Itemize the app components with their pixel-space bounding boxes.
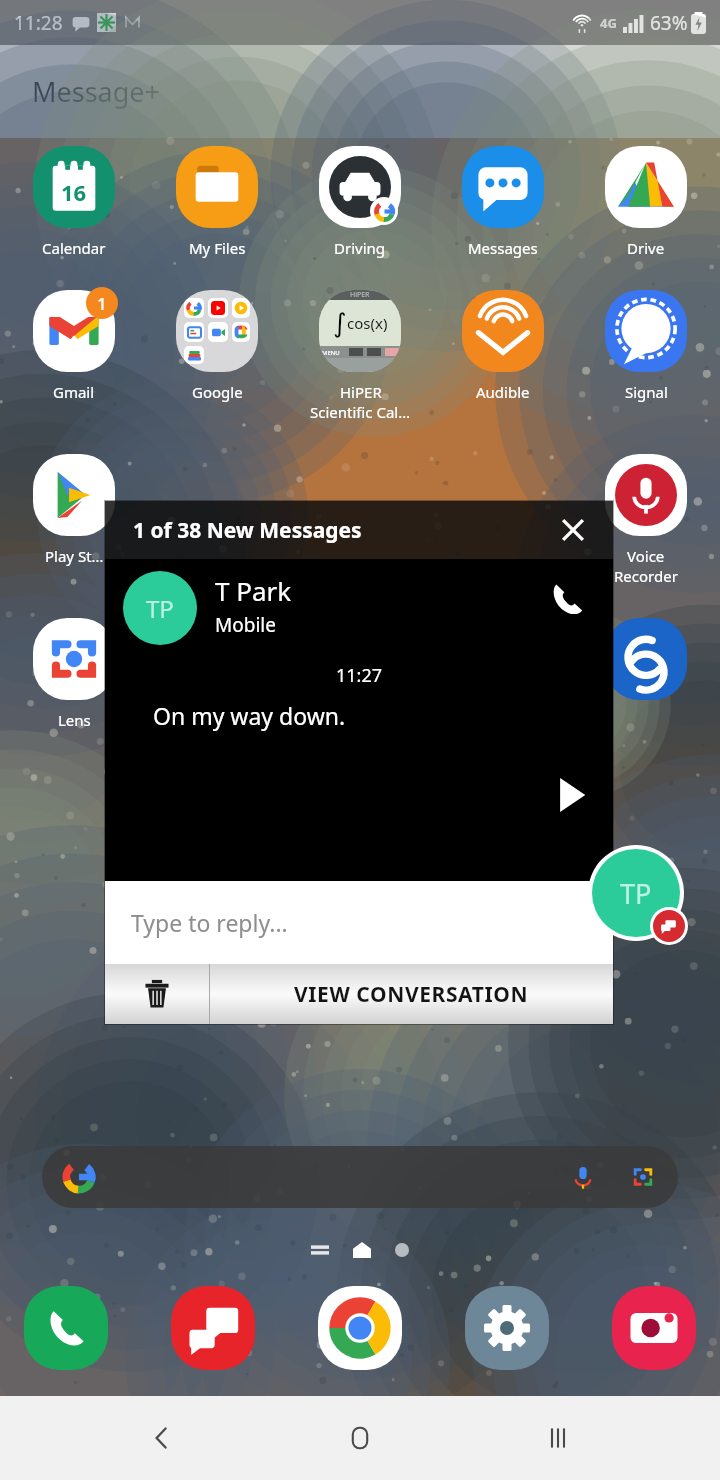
staticText: TP <box>620 875 652 912</box>
button[interactable]: Messages <box>439 144 567 258</box>
staticText: Gmail <box>53 382 95 402</box>
button[interactable]: Next message <box>543 767 599 823</box>
staticText: VIEW CONVERSATION <box>294 980 529 1009</box>
button[interactable]: 16 <box>10 144 138 258</box>
button[interactable] <box>42 1146 678 1208</box>
staticText: Drive <box>627 238 665 258</box>
button[interactable]: Home <box>324 1402 396 1474</box>
staticText: Recorder <box>614 566 678 586</box>
staticText: Audible <box>476 382 530 402</box>
staticText: 11:27 <box>105 663 613 688</box>
staticText: ∫ <box>333 308 347 338</box>
button[interactable] <box>612 1286 696 1370</box>
staticText: Message+ <box>32 73 161 110</box>
staticText: Play St… <box>45 546 104 566</box>
button[interactable]: Google <box>153 288 281 402</box>
staticText: Type to reply... <box>131 907 288 938</box>
button[interactable] <box>318 1286 402 1370</box>
staticText: Mobile <box>215 612 276 638</box>
staticText: Scientific Cal… <box>310 402 411 422</box>
button[interactable] <box>582 616 710 730</box>
button[interactable]: My Files <box>153 144 281 258</box>
staticText: 16 <box>61 177 87 207</box>
button[interactable]: Drive <box>582 144 710 258</box>
staticText: HiPER <box>350 290 370 300</box>
staticText: Driving <box>334 238 386 258</box>
button[interactable]: Back <box>126 1402 198 1474</box>
staticText: Messages <box>468 238 538 258</box>
staticText: Calendar <box>42 238 106 258</box>
button[interactable]: Call <box>539 571 595 627</box>
staticText: cos(x) <box>347 313 388 333</box>
staticText: T Park <box>215 573 292 608</box>
button[interactable]: Delete <box>105 964 209 1024</box>
button[interactable]: Play St… <box>10 452 138 566</box>
button[interactable]: Signal <box>582 288 710 402</box>
staticText: Google <box>192 382 243 402</box>
button[interactable]: Lens <box>10 616 138 730</box>
staticText: My Files <box>189 238 246 258</box>
staticText: MENU <box>322 349 340 357</box>
button[interactable]: Recents <box>522 1402 594 1474</box>
button[interactable]: Type to reply... <box>105 881 613 964</box>
staticText: HiPER <box>340 382 382 402</box>
button[interactable] <box>171 1286 255 1370</box>
staticText: 1 of 38 New Messages <box>133 516 362 545</box>
button[interactable]: T Park chat bubble <box>592 849 680 937</box>
button[interactable] <box>465 1286 549 1370</box>
staticText: Voice <box>627 546 665 566</box>
staticText: 1 <box>97 292 107 315</box>
staticText: 63% <box>650 10 688 36</box>
button[interactable]: HiPER <box>296 288 424 422</box>
staticText: TP <box>146 592 174 625</box>
staticText: 11:28 <box>14 10 63 36</box>
button[interactable]: Audible <box>439 288 567 402</box>
button[interactable]: 1 <box>10 288 138 402</box>
staticText: Signal <box>625 382 668 402</box>
staticText: On my way down. <box>153 700 346 731</box>
button[interactable]: Close <box>551 508 595 552</box>
button[interactable]: VIEW CONVERSATION <box>210 964 613 1024</box>
staticText: Lens <box>58 710 91 730</box>
button[interactable]: Driving <box>296 144 424 258</box>
button[interactable] <box>24 1286 108 1370</box>
button[interactable]: Voice <box>582 452 710 586</box>
staticText: 4G <box>600 14 617 32</box>
